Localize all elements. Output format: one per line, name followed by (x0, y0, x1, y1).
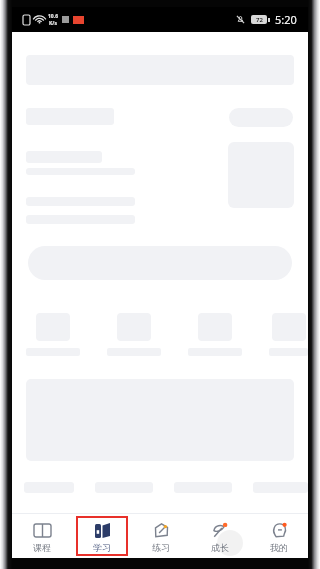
staticText: 5:20 (275, 12, 297, 27)
staticText: 课程 (33, 542, 51, 553)
button[interactable]: 我的 (249, 514, 308, 558)
staticText: 我的 (270, 542, 288, 553)
button[interactable]: 成长 (190, 514, 249, 558)
staticText: 练习 (152, 542, 170, 553)
staticText: 10.6 (48, 13, 58, 20)
button[interactable]: 课程 (12, 514, 72, 558)
staticText: 学习 (93, 542, 111, 553)
staticText: 成长 (211, 542, 229, 553)
button[interactable]: 学习 (72, 514, 131, 558)
staticText: 72 (256, 16, 263, 24)
staticText: K/s (49, 20, 57, 27)
button[interactable]: 练习 (131, 514, 190, 558)
